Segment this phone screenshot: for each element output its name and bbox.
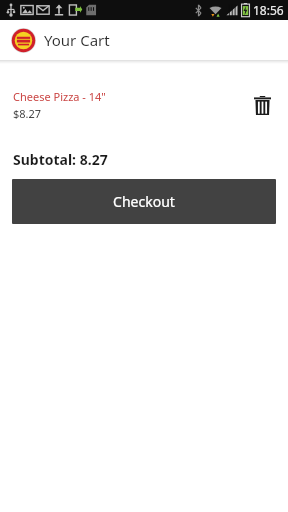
button[interactable]: Remove item bbox=[249, 92, 275, 118]
staticText: Your Cart bbox=[44, 30, 110, 50]
staticText: Subtotal: 8.27 bbox=[13, 150, 108, 169]
staticText: Checkout bbox=[113, 192, 175, 211]
staticText: Cheese Pizza - 14" bbox=[13, 89, 106, 104]
staticText: $8.27 bbox=[13, 106, 42, 121]
staticText: 18:56 bbox=[253, 2, 284, 18]
button[interactable]: Cheese Pizza - 14" bbox=[0, 82, 288, 128]
button[interactable]: App logo bbox=[11, 28, 36, 53]
button[interactable]: Checkout bbox=[12, 179, 276, 224]
